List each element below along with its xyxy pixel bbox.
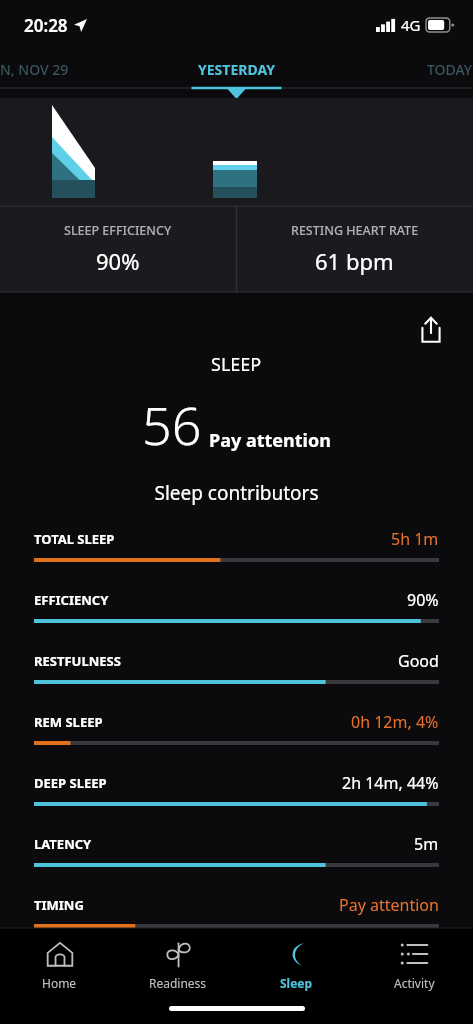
staticText: Pay attention xyxy=(339,894,439,916)
button[interactable]: EFFICIENCY xyxy=(34,589,439,623)
staticText: Sleep xyxy=(280,975,313,991)
staticText: 61 bpm xyxy=(315,246,394,276)
staticText: 2h 14m, 44% xyxy=(342,772,439,794)
staticText: Readiness xyxy=(149,975,207,991)
staticText: EFFICIENCY xyxy=(34,591,109,609)
staticText: REM SLEEP xyxy=(34,713,103,731)
button[interactable]: Share xyxy=(411,310,451,350)
button[interactable]: TOTAL SLEEP xyxy=(34,528,439,562)
button[interactable]: Home xyxy=(0,929,119,1001)
button[interactable]: SLEEP EFFICIENCY xyxy=(0,206,236,292)
button[interactable]: RESTFULNESS xyxy=(34,650,439,684)
button[interactable]: DEEP SLEEP xyxy=(34,772,439,806)
button[interactable]: Activity xyxy=(355,929,473,1001)
staticText: 90% xyxy=(96,246,140,276)
staticText: SLEEP xyxy=(211,352,262,377)
staticText: Good xyxy=(398,650,439,672)
staticText: YESTERDAY xyxy=(198,60,275,79)
staticText: Sleep contributors xyxy=(0,480,473,506)
button[interactable]: Sleep xyxy=(237,929,355,1001)
staticText: Home xyxy=(42,975,77,991)
staticText: 90% xyxy=(407,589,439,611)
staticText: LATENCY xyxy=(34,835,92,853)
staticText: SLEEP EFFICIENCY xyxy=(64,222,172,239)
button[interactable]: REM SLEEP xyxy=(34,711,439,745)
staticText: 4G xyxy=(401,15,421,35)
staticText: DEEP SLEEP xyxy=(34,774,107,792)
button[interactable]: RESTING HEART RATE xyxy=(236,206,473,292)
staticText: 20:28 xyxy=(24,14,68,37)
button[interactable]: LATENCY xyxy=(34,833,439,867)
staticText: TIMING xyxy=(34,896,84,914)
staticText: 5m xyxy=(414,833,439,855)
staticText: RESTING HEART RATE xyxy=(291,222,419,239)
staticText: TOTAL SLEEP xyxy=(34,530,115,548)
button[interactable]: N, NOV 29 xyxy=(0,60,69,79)
staticText: RESTFULNESS xyxy=(34,652,121,670)
staticText: Pay attention xyxy=(209,428,331,453)
staticText: 0h 12m, 4% xyxy=(351,711,439,733)
button[interactable]: Readiness xyxy=(119,929,237,1001)
button[interactable]: YESTERDAY xyxy=(198,60,275,79)
button[interactable]: TIMING xyxy=(34,894,439,928)
staticText: 5h 1m xyxy=(391,528,439,550)
staticText: 56 xyxy=(142,389,202,460)
staticText: Activity xyxy=(394,975,435,991)
button[interactable]: TODAY xyxy=(427,60,473,79)
